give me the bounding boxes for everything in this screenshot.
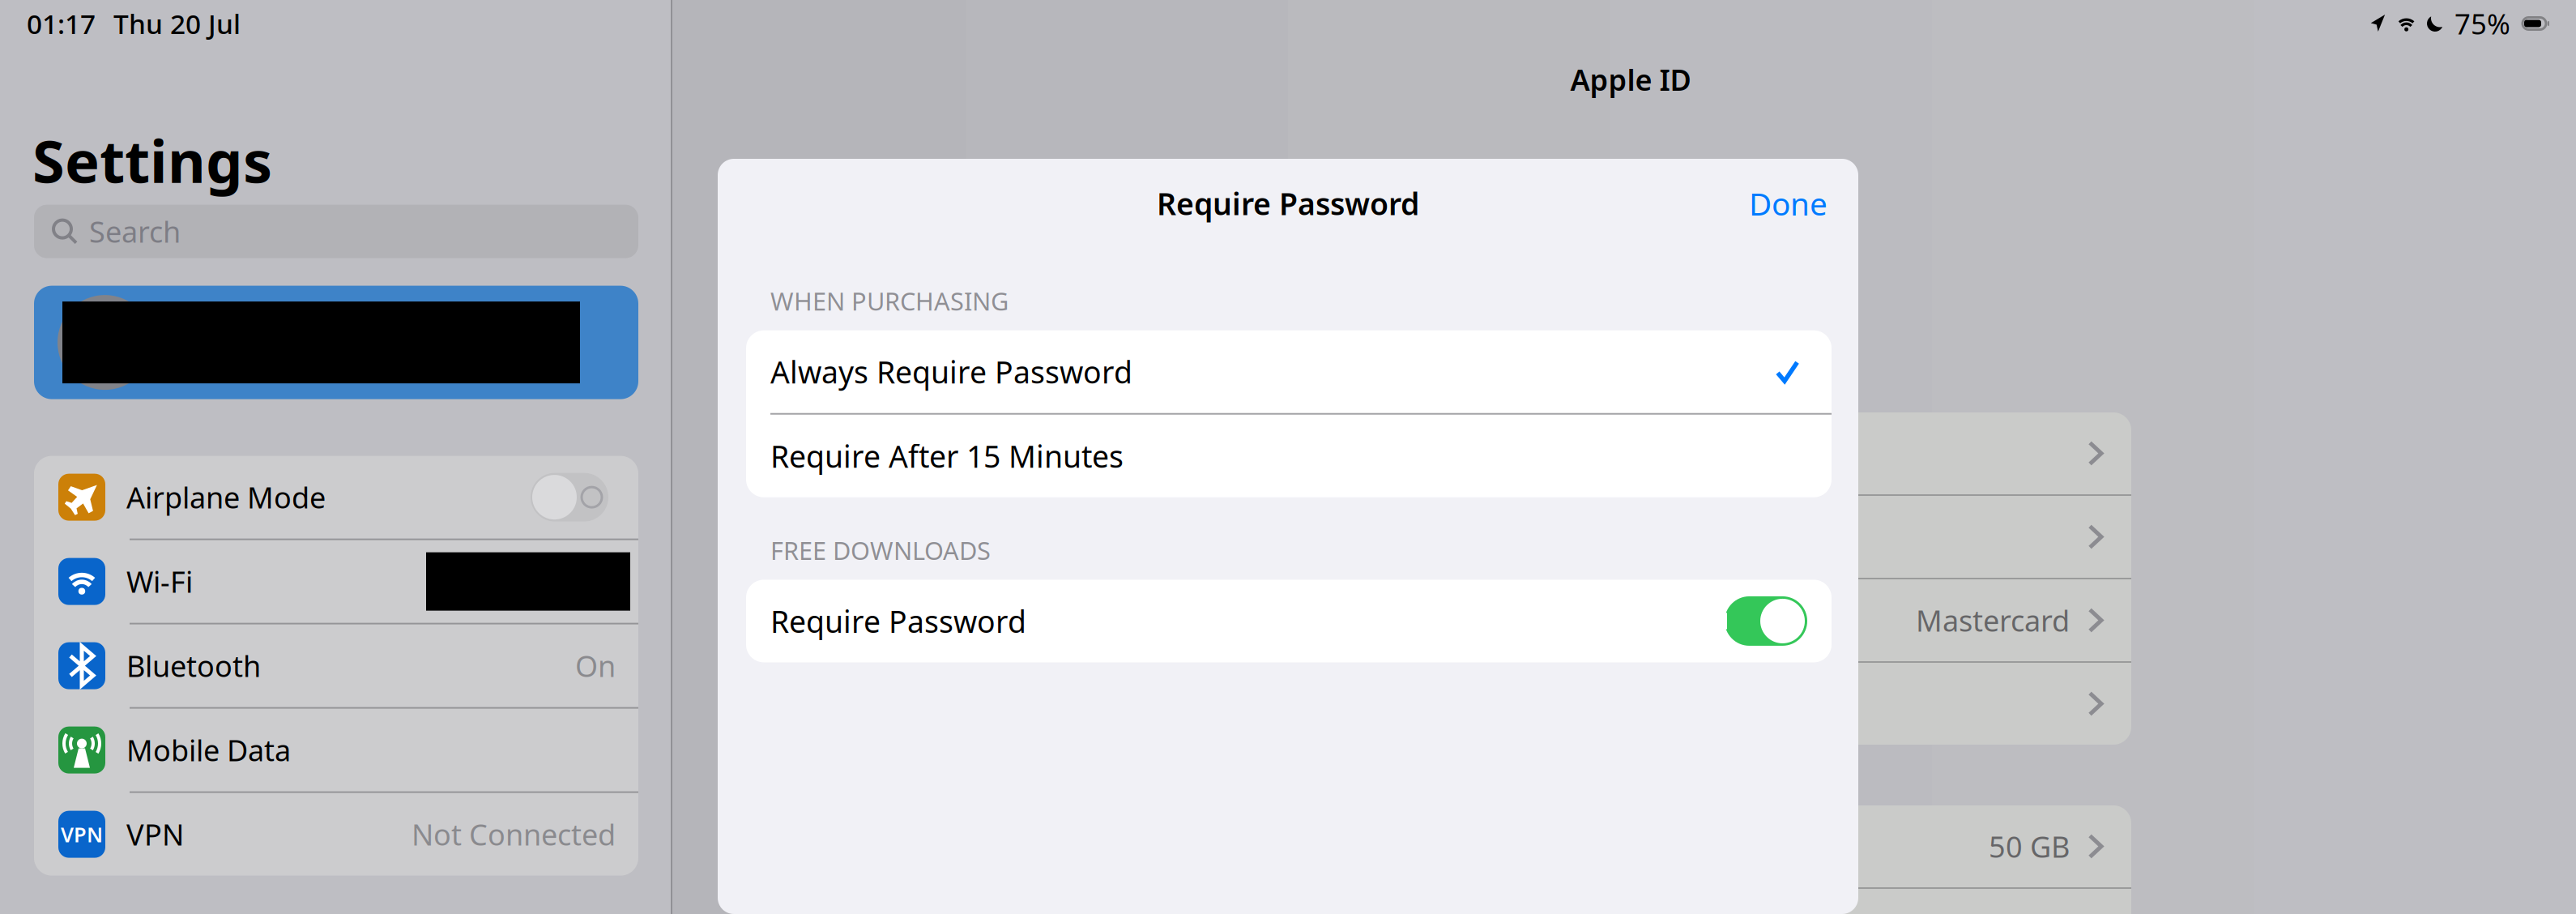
staticText: Wi-Fi xyxy=(126,562,193,601)
staticText: Mastercard xyxy=(1916,601,2070,640)
staticText: 01:17 xyxy=(27,6,96,41)
staticText: Require Password xyxy=(770,601,1026,641)
staticText: Not Connected xyxy=(412,815,616,854)
button[interactable]: Wi-Fi xyxy=(34,540,638,623)
staticText: VPN xyxy=(126,815,184,854)
button[interactable]: Airplane Mode xyxy=(34,456,638,539)
staticText: Settings xyxy=(32,122,272,199)
button[interactable]: Require Password xyxy=(746,580,1832,662)
staticText: VPN xyxy=(61,821,103,848)
staticText: Apple ID xyxy=(1570,60,1691,99)
staticText: Always Require Password xyxy=(770,352,1132,392)
staticText: Done xyxy=(1749,183,1828,224)
staticText: Require After 15 Minutes xyxy=(770,436,1124,476)
staticText: Bluetooth xyxy=(126,646,261,685)
staticText: Airplane Mode xyxy=(126,478,326,517)
staticText: Thu 20 Jul xyxy=(113,6,241,41)
staticText: WHEN PURCHASING xyxy=(770,284,1009,317)
staticText: 75% xyxy=(2454,5,2510,42)
button[interactable]: VPN xyxy=(34,793,638,876)
button[interactable]: Mobile Data xyxy=(34,709,638,791)
staticText: FREE DOWNLOADS xyxy=(770,534,991,567)
button[interactable]: Bluetooth xyxy=(34,624,638,707)
button[interactable]: Apple ID xyxy=(1509,57,1752,102)
button[interactable]: Done xyxy=(718,183,1858,224)
staticText: On xyxy=(575,646,616,685)
staticText: Require Password xyxy=(1157,183,1419,223)
button[interactable]: Always Require Password xyxy=(746,330,1832,413)
button[interactable] xyxy=(34,286,638,399)
staticText: 50 GB xyxy=(1989,827,2070,866)
staticText: Search xyxy=(89,212,181,251)
button[interactable]: Require After 15 Minutes xyxy=(746,415,1832,497)
staticText: Mobile Data xyxy=(126,731,291,769)
